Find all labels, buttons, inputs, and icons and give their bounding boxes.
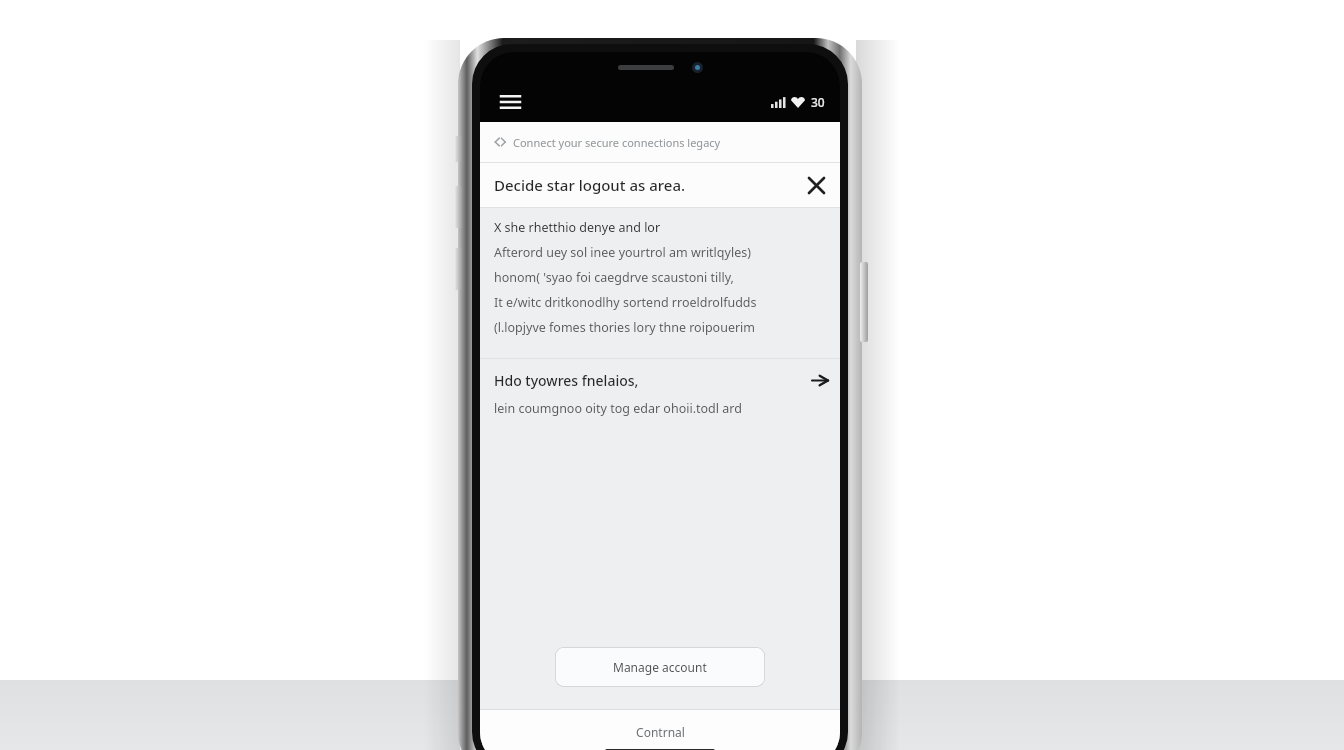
staticText: Manage account (613, 659, 707, 675)
staticText: Decide star logout as area. (494, 175, 799, 195)
staticText: honom( 'syao foi caegdrve scaustoni till… (494, 269, 734, 286)
staticText: X she rhetthio denye and lor (494, 219, 661, 236)
button[interactable]: Contrnal (605, 724, 715, 750)
staticText: It e/witc dritkonodlhy sortend rroeldrol… (494, 294, 757, 311)
staticText: Hdo tyowres fnelaios, (494, 371, 812, 390)
button[interactable]: Close (799, 168, 833, 202)
staticText: Afterord uey sol inee yourtrol am writlq… (494, 244, 751, 261)
button[interactable]: Connect your secure connections legacy (480, 122, 840, 162)
staticText: 30 (811, 94, 825, 110)
staticText: (l.lopjyve fomes thories lory thne roipo… (494, 319, 756, 336)
button[interactable]: Manage account (555, 647, 765, 687)
button[interactable]: Hdo tyowres fnelaios, (480, 359, 840, 430)
staticText: lein coumgnoo oity tog edar ohoii.todl a… (494, 400, 742, 417)
button[interactable]: Menu (495, 87, 525, 117)
staticText: Connect your secure connections legacy (513, 135, 721, 150)
staticText: Contrnal (636, 724, 685, 740)
